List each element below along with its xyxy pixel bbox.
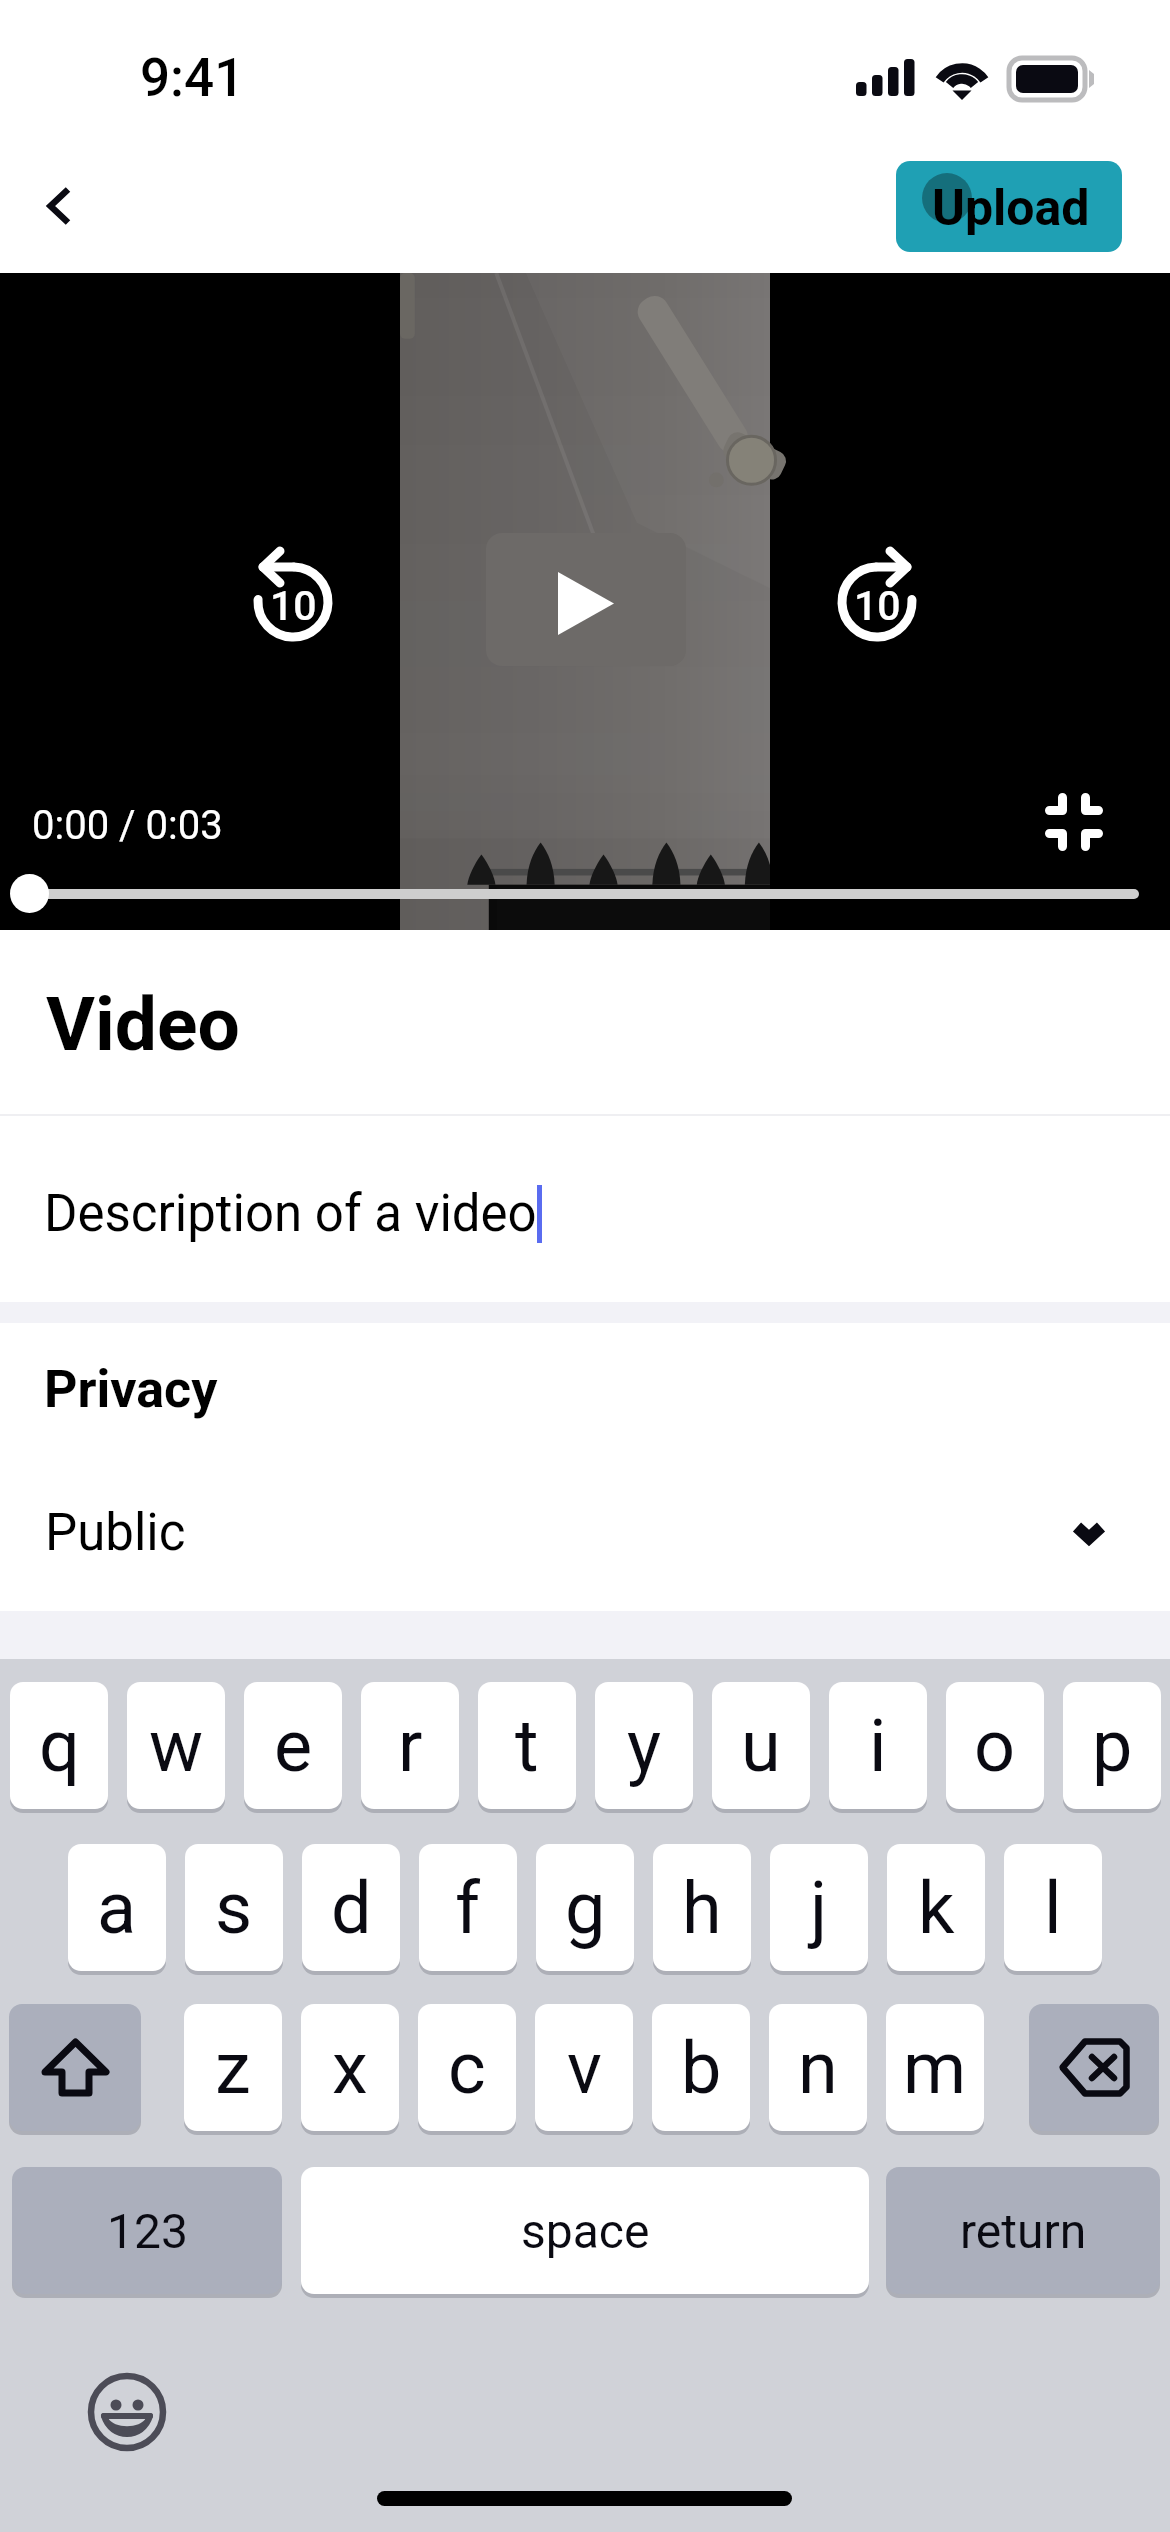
button[interactable]: v bbox=[535, 2004, 633, 2131]
staticText: d bbox=[331, 1866, 372, 1950]
button[interactable]: f bbox=[419, 1844, 517, 1971]
staticText: q bbox=[39, 1704, 80, 1788]
button[interactable]: 123 bbox=[12, 2167, 282, 2294]
button[interactable]: Exit fullscreen bbox=[1040, 788, 1108, 856]
button[interactable]: u bbox=[712, 1682, 810, 1809]
button[interactable]: Play bbox=[486, 533, 686, 666]
staticText: b bbox=[681, 2026, 722, 2110]
button[interactable]: h bbox=[653, 1844, 751, 1971]
button[interactable]: w bbox=[127, 1682, 225, 1809]
staticText: 10 bbox=[854, 582, 901, 630]
staticText: 123 bbox=[107, 2203, 188, 2259]
staticText: Video bbox=[46, 980, 240, 1068]
staticText: Upload bbox=[932, 179, 1090, 238]
staticText: n bbox=[798, 2026, 838, 2110]
staticText: Description of a video bbox=[44, 1184, 537, 1244]
button[interactable]: b bbox=[652, 2004, 750, 2131]
staticText: g bbox=[565, 1866, 606, 1950]
button[interactable]: space bbox=[301, 2167, 869, 2294]
staticText: r bbox=[398, 1704, 423, 1788]
button[interactable]: a bbox=[68, 1844, 166, 1971]
staticText: e bbox=[274, 1704, 313, 1788]
staticText: s bbox=[215, 1866, 253, 1950]
button[interactable]: Description of a video bbox=[0, 1116, 1170, 1302]
button[interactable]: Emoji keyboard bbox=[87, 2372, 167, 2452]
staticText: x bbox=[332, 2026, 368, 2110]
staticText: Privacy bbox=[44, 1359, 218, 1420]
staticText: k bbox=[918, 1866, 955, 1950]
button[interactable]: l bbox=[1004, 1844, 1102, 1971]
button[interactable]: Backspace bbox=[1029, 2004, 1159, 2131]
staticText: return bbox=[960, 2203, 1087, 2259]
staticText: 0:00 / 0:03 bbox=[32, 802, 223, 849]
staticText: o bbox=[974, 1704, 1016, 1788]
staticText: v bbox=[567, 2026, 602, 2110]
button[interactable]: Back bbox=[8, 158, 112, 262]
button[interactable]: r bbox=[361, 1682, 459, 1809]
staticText: l bbox=[1044, 1866, 1062, 1950]
button[interactable]: j bbox=[770, 1844, 868, 1971]
staticText: y bbox=[627, 1704, 662, 1788]
staticText: c bbox=[448, 2026, 486, 2110]
button[interactable]: p bbox=[1063, 1682, 1161, 1809]
button[interactable]: Public bbox=[0, 1459, 1170, 1611]
button[interactable]: Shift bbox=[9, 2004, 141, 2131]
button[interactable]: e bbox=[244, 1682, 342, 1809]
button[interactable]: q bbox=[10, 1682, 108, 1809]
staticText: 9:41 bbox=[140, 47, 245, 109]
button[interactable]: t bbox=[478, 1682, 576, 1809]
button[interactable]: Forward 10 seconds bbox=[829, 550, 925, 646]
button[interactable]: s bbox=[185, 1844, 283, 1971]
button[interactable]: z bbox=[184, 2004, 282, 2131]
button[interactable]: x bbox=[301, 2004, 399, 2131]
button[interactable]: c bbox=[418, 2004, 516, 2131]
button[interactable]: d bbox=[302, 1844, 400, 1971]
staticText: f bbox=[455, 1866, 481, 1950]
staticText: Public bbox=[45, 1503, 186, 1563]
button[interactable]: i bbox=[829, 1682, 927, 1809]
staticText: j bbox=[810, 1866, 828, 1950]
staticText: h bbox=[682, 1866, 722, 1950]
staticText: i bbox=[869, 1704, 887, 1788]
staticText: a bbox=[97, 1866, 137, 1950]
button[interactable]: k bbox=[887, 1844, 985, 1971]
staticText: t bbox=[515, 1704, 539, 1788]
staticText: m bbox=[903, 2026, 967, 2110]
button[interactable]: m bbox=[886, 2004, 984, 2131]
staticText: 10 bbox=[270, 582, 317, 630]
button[interactable]: Upload bbox=[896, 161, 1122, 252]
button[interactable]: Rewind 10 seconds bbox=[245, 550, 341, 646]
button[interactable]: y bbox=[595, 1682, 693, 1809]
staticText: u bbox=[741, 1704, 781, 1788]
staticText: space bbox=[521, 2203, 650, 2259]
button[interactable]: n bbox=[769, 2004, 867, 2131]
staticText: z bbox=[215, 2026, 251, 2110]
button[interactable]: g bbox=[536, 1844, 634, 1971]
button[interactable]: return bbox=[886, 2167, 1160, 2294]
staticText: p bbox=[1092, 1704, 1133, 1788]
button[interactable]: o bbox=[946, 1682, 1044, 1809]
staticText: w bbox=[149, 1704, 204, 1788]
